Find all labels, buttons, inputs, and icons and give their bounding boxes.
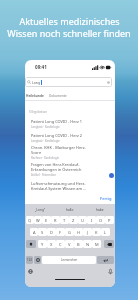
button[interactable]: Shift (26, 240, 36, 248)
staticText: I (91, 218, 93, 223)
staticText: P (108, 218, 111, 223)
staticText: R (54, 218, 57, 223)
staticText: habe (96, 208, 104, 212)
button[interactable]: Z (69, 216, 78, 224)
button[interactable]: M (92, 240, 101, 248)
button[interactable]: L (101, 228, 110, 236)
staticText: X (50, 242, 53, 247)
staticText: Dokumente (49, 94, 67, 98)
button[interactable]: B (74, 240, 83, 248)
button[interactable]: Dictation (107, 268, 113, 274)
button[interactable]: Fragen von Herz-Kreislauf- (25, 161, 115, 180)
staticText: Long (32, 80, 41, 85)
button[interactable]: Patient Long COVID - Herz 1 (25, 118, 115, 132)
staticText: „Long" (35, 208, 46, 212)
staticText: F (59, 230, 62, 235)
button[interactable]: C (56, 240, 65, 248)
button[interactable]: hallo (55, 208, 85, 212)
staticText: 123 (27, 258, 32, 262)
staticText: Artikel · Prävention (31, 173, 56, 177)
button[interactable]: „Long" (25, 208, 55, 212)
staticText: Kreislauf-System Wissen am ... (31, 186, 87, 191)
button[interactable]: T (60, 216, 69, 224)
staticText: Wissen noch schneller finden (7, 27, 131, 39)
staticText: Heilekunde (26, 94, 44, 98)
staticText: Langtext · Kardiologie (31, 125, 60, 129)
button[interactable]: Backspace (104, 240, 114, 248)
button[interactable]: Change language (27, 268, 33, 274)
staticText: G (68, 230, 71, 235)
staticText: Y (41, 242, 44, 247)
button[interactable]: P (105, 216, 114, 224)
button[interactable]: Dokumente (49, 94, 67, 98)
button[interactable]: X (47, 240, 56, 248)
staticText: Q (28, 218, 32, 223)
button[interactable]: O (96, 216, 105, 224)
staticText: 5 Ergebnisse (29, 110, 47, 114)
staticText: Langtext · Kardiologie (31, 139, 60, 143)
staticText: A (33, 230, 36, 235)
button[interactable]: G (65, 228, 74, 236)
button[interactable]: Q (26, 216, 34, 224)
button[interactable]: Y (38, 240, 47, 248)
staticText: Erkrankungen in Österreich (31, 167, 82, 172)
button[interactable]: K (92, 228, 101, 236)
button[interactable]: Long (25, 77, 112, 87)
staticText: M (95, 242, 99, 247)
button[interactable]: R (51, 216, 60, 224)
button[interactable]: Leerzeichen (42, 256, 96, 264)
button[interactable]: F (56, 228, 65, 236)
button[interactable]: I (87, 216, 96, 224)
button[interactable]: Patient Long COVID - Herz 2 (25, 132, 115, 144)
staticText: L (104, 230, 107, 235)
button[interactable]: U (78, 216, 87, 224)
button[interactable]: Emoji (34, 256, 41, 264)
staticText: K (95, 230, 98, 235)
button[interactable]: E (42, 216, 51, 224)
staticText: T (63, 218, 66, 223)
staticText: Rechner · Kardiologie (31, 156, 60, 160)
button[interactable]: Luftverschmutzung und Herz- (25, 180, 115, 198)
staticText: Chron. KHK - Marburger Herz- (31, 145, 86, 150)
staticText: 09:41 (35, 64, 47, 70)
staticText: B (77, 242, 80, 247)
staticText: hallo (66, 208, 74, 212)
button[interactable]: Return (97, 256, 114, 264)
button[interactable]: H (74, 228, 83, 236)
button[interactable]: Numbers (26, 256, 33, 264)
staticText: W (36, 218, 40, 223)
staticText: Patient Long COVID - Herz 1 (31, 119, 83, 124)
staticText: Z (72, 218, 75, 223)
button[interactable]: J (83, 228, 92, 236)
staticText: H (77, 230, 80, 235)
staticText: O (99, 218, 103, 223)
button[interactable]: A (30, 228, 38, 236)
button[interactable]: habe (85, 208, 115, 212)
staticText: Aktuelles medizinisches (19, 15, 120, 27)
button[interactable]: N (83, 240, 92, 248)
button[interactable]: S (38, 228, 47, 236)
staticText: V (68, 242, 71, 247)
staticText: E (45, 218, 48, 223)
staticText: N (86, 242, 90, 247)
staticText: Leerzeichen (61, 258, 78, 262)
button[interactable]: D (47, 228, 56, 236)
staticText: Patient Long COVID - Herz 2 (31, 133, 83, 138)
button[interactable]: Fertig (100, 196, 112, 202)
staticText: C (59, 242, 62, 247)
staticText: Fertig (100, 196, 112, 202)
staticText: D (50, 230, 53, 235)
staticText: Luftverschmutzung und Herz- (31, 181, 86, 186)
button[interactable]: V (65, 240, 74, 248)
staticText: U (81, 218, 84, 223)
button[interactable]: Chron. KHK - Marburger Herz- (25, 144, 115, 161)
staticText: J (87, 230, 89, 235)
staticText: Fragen von Herz-Kreislauf- (31, 162, 80, 167)
button[interactable]: W (34, 216, 42, 224)
staticText: S (41, 230, 44, 235)
staticText: Score (31, 150, 42, 155)
button[interactable]: Heilekunde (26, 94, 44, 98)
